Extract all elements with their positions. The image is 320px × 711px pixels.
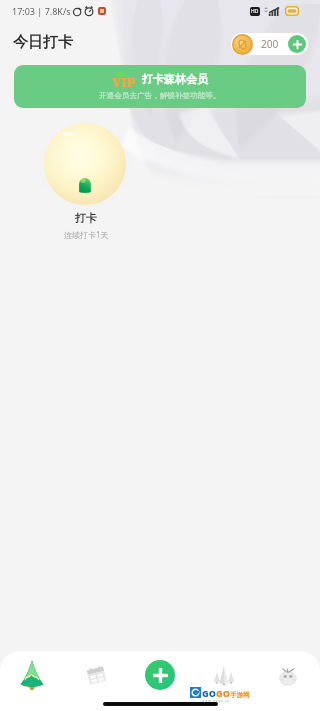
staticText: 打卡 [75,211,97,225]
staticText: 今日打卡 [13,33,73,52]
button[interactable]: Add coins [288,35,306,53]
staticText: 手游网 [230,691,250,699]
staticText: VIP [112,73,136,87]
staticText: 200 [261,37,279,51]
staticText: w w w . g o g o . c n [202,699,230,703]
staticText: 打卡森林会员 [142,72,208,86]
staticText: 开通会员去广告，解锁补签功能等。 [99,91,221,101]
button[interactable]: 200 [231,33,308,55]
staticText: GO [216,687,230,699]
button[interactable]: Forests [200,651,248,711]
button[interactable]: Forest [8,651,56,711]
button[interactable]: Profile [264,651,312,711]
staticText: GO [202,687,216,699]
button[interactable]: Check in [44,123,126,205]
staticText: 连续打卡1天 [64,229,109,240]
button[interactable]: Calendar [72,651,120,711]
staticText: HD [251,8,259,15]
button[interactable]: VIP [14,65,306,108]
staticText: 17:03 | 7.8K/s [12,5,71,17]
button[interactable]: Add [145,660,175,690]
